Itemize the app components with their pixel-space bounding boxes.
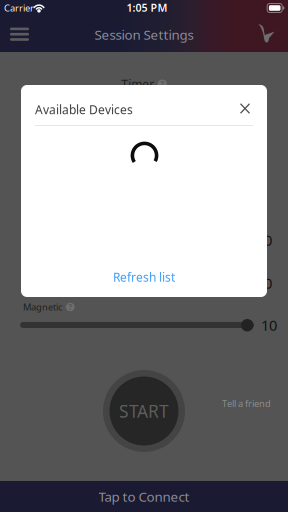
staticText: Tap to Connect [98, 488, 189, 505]
staticText: Tell a friend [222, 397, 271, 410]
staticText: START [119, 399, 169, 422]
button[interactable]: Close [230, 93, 260, 123]
button[interactable]: Tap to Connect [0, 481, 288, 512]
staticText: Timer [121, 76, 154, 92]
staticText: Available Devices [35, 101, 133, 117]
staticText: 0 [264, 230, 272, 250]
button[interactable]: Menu [0, 17, 39, 51]
staticText: 0 [264, 273, 272, 293]
button[interactable]: Refresh list [21, 264, 267, 290]
staticText: ? [160, 79, 164, 89]
staticText: Magnetic [23, 301, 62, 313]
button[interactable]: Tell a friend [201, 396, 271, 410]
staticText: 1:05 PM [126, 0, 167, 15]
staticText: ? [68, 302, 72, 312]
staticText: Refresh list [113, 269, 175, 285]
button[interactable]: START [103, 370, 185, 452]
staticText: Session Settings [94, 26, 193, 43]
staticText: Carrier [4, 2, 34, 14]
staticText: 10 [261, 315, 277, 335]
